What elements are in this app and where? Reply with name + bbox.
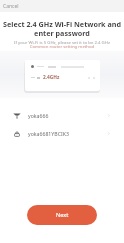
other: Choose network	[106, 113, 111, 118]
staticText: 2.4GHz	[43, 74, 60, 81]
other: Show password	[106, 131, 111, 136]
staticText: yoka666	[28, 112, 49, 119]
staticText: Cancel	[3, 3, 19, 10]
staticText: Select 2.4 GHz Wi-Fi Network and enter p…	[0, 19, 124, 38]
staticText: Next	[56, 211, 69, 219]
staticText: If your Wi-Fi is 5 GHz, please set it to…	[0, 39, 124, 45]
staticText: yoka6681YBCIK3	[28, 130, 69, 137]
button[interactable]: Next	[27, 205, 97, 225]
button[interactable]: Cancel	[0, 1, 22, 12]
button[interactable]: Common router setting method	[0, 43, 124, 49]
button[interactable]: yoka666	[0, 106, 124, 124]
button[interactable]: yoka6681YBCIK3	[0, 124, 124, 142]
